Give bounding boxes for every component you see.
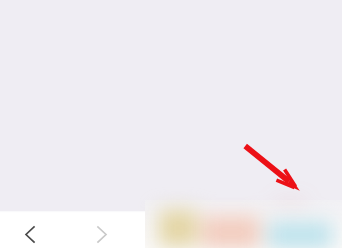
button[interactable]: First preview tile — [159, 210, 203, 248]
button[interactable]: Back — [13, 217, 47, 248]
button[interactable]: Second preview tile — [206, 216, 264, 248]
button[interactable]: Forward — [85, 217, 119, 248]
button[interactable]: Third preview tile — [272, 222, 336, 248]
